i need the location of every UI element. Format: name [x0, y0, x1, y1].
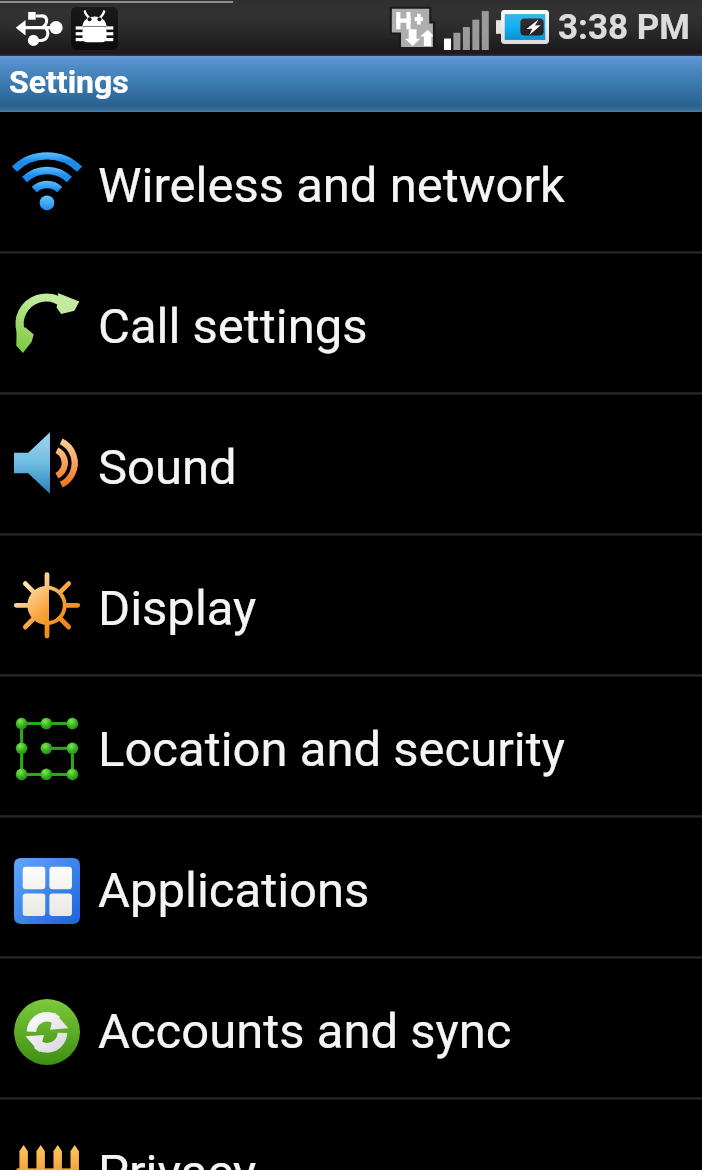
staticText: 3:38 PM	[558, 7, 691, 48]
button[interactable]: Display	[0, 536, 702, 674]
button[interactable]: Wireless and network	[0, 113, 702, 251]
staticText: Settings	[9, 63, 129, 101]
staticText: Wireless and network	[98, 157, 565, 214]
staticText: Privacy	[98, 1144, 257, 1170]
button[interactable]: Privacy	[0, 1100, 702, 1170]
button[interactable]: Applications	[0, 818, 702, 956]
staticText: Applications	[98, 862, 370, 919]
button[interactable]: Sound	[0, 395, 702, 533]
staticText: Sound	[98, 439, 237, 496]
button[interactable]: Call settings	[0, 254, 702, 392]
staticText: Call settings	[98, 298, 368, 355]
button[interactable]: Location and security	[0, 677, 702, 815]
button[interactable]: Accounts and sync	[0, 959, 702, 1097]
staticText: Location and security	[98, 721, 565, 778]
staticText: Accounts and sync	[98, 1003, 512, 1060]
staticText: Display	[98, 580, 257, 637]
